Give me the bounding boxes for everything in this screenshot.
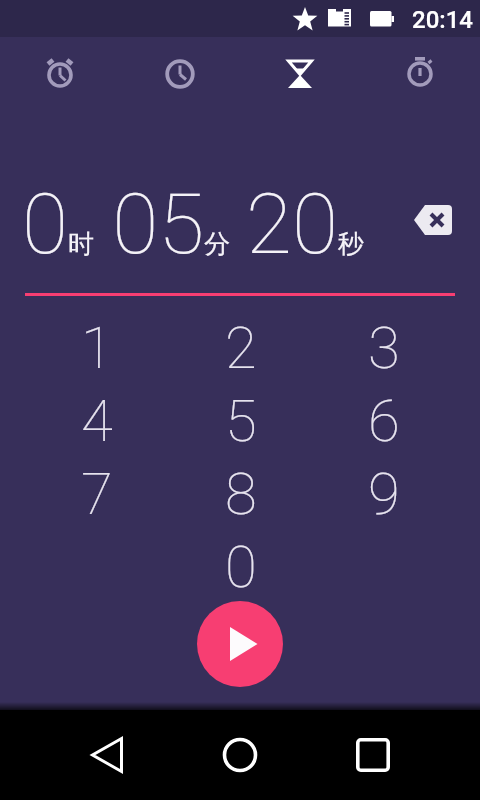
button[interactable]: 8 [169,457,312,530]
button[interactable] [77,725,137,785]
button[interactable]: 1 [25,311,169,384]
button[interactable]: 2 [169,311,312,384]
button[interactable] [360,37,480,113]
staticText: 2 [225,314,257,382]
button[interactable] [0,37,120,113]
staticText: 4 [81,387,113,455]
button[interactable]: 7 [25,457,169,530]
button[interactable] [197,601,283,687]
button[interactable] [343,725,403,785]
staticText: 20:14 [412,6,473,34]
button[interactable]: 4 [25,384,169,457]
staticText: 6 [368,387,400,455]
button[interactable]: 5 [169,384,312,457]
button[interactable]: 9 [312,457,455,530]
staticText: 8 [225,460,257,528]
staticText: 5 [225,387,257,455]
button[interactable] [120,37,240,113]
staticText: 7 [81,460,113,528]
staticText: 9 [368,460,400,528]
staticText: 0时 05分 20秒 [22,175,364,273]
staticText: 1 [81,314,113,382]
staticText: 0 [225,533,257,601]
button[interactable] [210,725,270,785]
button[interactable]: 6 [312,384,455,457]
button[interactable]: 0 [169,530,312,603]
staticText: 3 [368,314,400,382]
button[interactable] [405,196,461,244]
button[interactable] [240,37,360,113]
button[interactable]: 3 [312,311,455,384]
